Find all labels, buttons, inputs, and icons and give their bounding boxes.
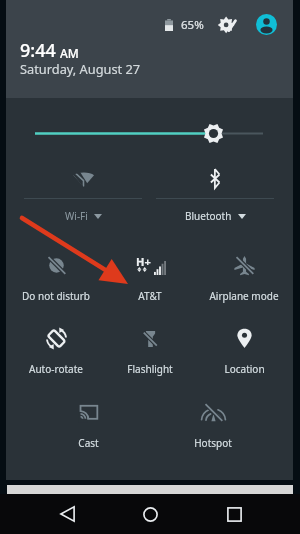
button[interactable]: Back bbox=[42, 494, 92, 534]
button[interactable]: Bluetooth bbox=[153, 160, 277, 226]
button[interactable]: Cast bbox=[41, 399, 135, 472]
button[interactable]: Do not disturb bbox=[9, 252, 103, 325]
staticText: Hotspot bbox=[194, 436, 232, 450]
button[interactable]: Airplane mode bbox=[197, 252, 291, 325]
button[interactable]: Brightness bbox=[6, 118, 293, 150]
staticText: Bluetooth bbox=[185, 209, 232, 223]
staticText: AM bbox=[60, 45, 79, 61]
button[interactable]: Recent apps bbox=[209, 494, 259, 534]
staticText: Auto-rotate bbox=[29, 362, 83, 376]
staticText: Wi-Fi bbox=[65, 209, 88, 223]
staticText: H+ bbox=[136, 254, 151, 269]
button[interactable]: Location bbox=[197, 325, 291, 398]
button[interactable]: User profile bbox=[256, 14, 277, 35]
staticText: Do not disturb bbox=[22, 289, 90, 303]
staticText: 9:44 bbox=[20, 38, 56, 63]
staticText: Airplane mode bbox=[209, 289, 279, 303]
staticText: 65% bbox=[181, 17, 204, 33]
staticText: AT&T bbox=[138, 289, 162, 303]
button[interactable]: Settings bbox=[217, 15, 236, 34]
staticText: Flashlight bbox=[127, 362, 173, 376]
button[interactable]: Flashlight bbox=[103, 325, 197, 398]
button[interactable]: Home bbox=[125, 494, 175, 534]
button[interactable]: Auto-rotate bbox=[9, 325, 103, 398]
staticText: Saturday, August 27 bbox=[20, 60, 141, 77]
button[interactable]: Wi-Fi bbox=[21, 160, 145, 226]
button[interactable]: H+ bbox=[103, 252, 197, 325]
staticText: Location bbox=[224, 362, 265, 376]
button[interactable]: Hotspot bbox=[166, 399, 260, 472]
staticText: Cast bbox=[78, 436, 99, 450]
